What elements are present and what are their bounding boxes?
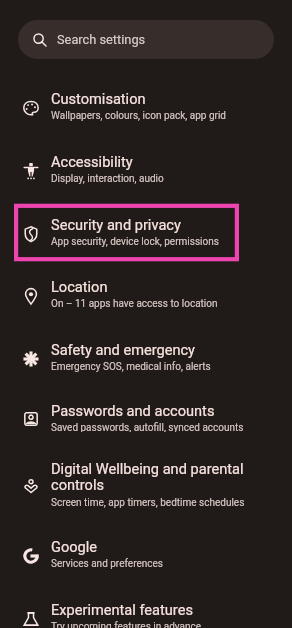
- staticText: Display, interaction, audio: [51, 173, 164, 185]
- button[interactable]: Passwords and accounts: [0, 386, 292, 444]
- button[interactable]: Search settings: [18, 20, 274, 59]
- staticText: Accessibility: [51, 153, 133, 170]
- staticText: App security, device lock, permissions: [51, 236, 219, 248]
- staticText: Digital Wellbeing and parental controls: [51, 460, 270, 494]
- staticText: Screen time, app timers, bedtime schedul…: [51, 497, 245, 508]
- staticText: Wallpapers, colours, icon pack, app grid: [51, 110, 226, 122]
- button[interactable]: Google: [0, 520, 292, 583]
- button[interactable]: Safety and emergency: [0, 323, 292, 386]
- staticText: Try upcoming features in advance: [51, 621, 202, 628]
- staticText: Emergency SOS, medical info, alerts: [51, 361, 211, 373]
- staticText: Security and privacy: [51, 216, 181, 233]
- button[interactable]: Digital Wellbeing and parental controls: [0, 444, 292, 520]
- staticText: Experimental features: [51, 601, 193, 618]
- button[interactable]: Location: [0, 261, 292, 323]
- button[interactable]: Customisation: [0, 73, 292, 135]
- staticText: Search settings: [57, 32, 146, 47]
- staticText: Safety and emergency: [51, 341, 196, 358]
- button[interactable]: Experimental features: [0, 583, 292, 628]
- staticText: Location: [51, 278, 108, 295]
- staticText: Saved passwords, autofill, synced accoun…: [51, 422, 244, 432]
- staticText: On – 11 apps have access to location: [51, 298, 218, 310]
- staticText: Passwords and accounts: [51, 402, 215, 419]
- staticText: Customisation: [51, 90, 146, 107]
- button[interactable]: Security and privacy: [0, 198, 292, 261]
- button[interactable]: Accessibility: [0, 135, 292, 198]
- staticText: Services and preferences: [51, 558, 163, 570]
- staticText: Google: [51, 538, 98, 555]
